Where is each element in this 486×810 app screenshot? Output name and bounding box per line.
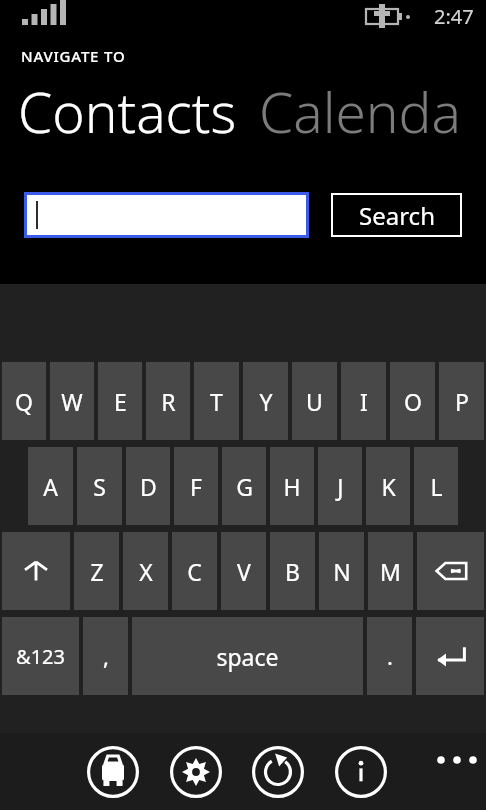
button[interactable]: H [270,447,314,525]
staticText: Search [359,199,435,232]
button[interactable]: &123 [2,617,79,695]
staticText: Z [90,556,104,587]
button[interactable]: More options [434,737,480,783]
button[interactable]: F [174,447,218,525]
staticText: J [337,471,344,502]
button[interactable]: X [123,532,168,610]
button[interactable]: N [319,532,364,610]
button[interactable]: Info [332,743,390,801]
button[interactable]: P [439,362,484,440]
staticText: R [161,386,176,417]
staticText: D [140,471,157,502]
button[interactable]: . [367,617,412,695]
staticText: S [93,471,106,502]
staticText: V [237,556,251,587]
button[interactable]: B [270,532,315,610]
staticText: H [283,471,301,502]
staticText: NAVIGATE TO [21,46,126,66]
button[interactable]: Settings [167,743,225,801]
staticText: L [430,471,443,502]
staticText: E [114,386,127,417]
button[interactable]: O [390,362,435,440]
button[interactable]: Contacts [18,74,237,146]
button[interactable]: E [98,362,142,440]
button[interactable]: K [366,447,410,525]
button[interactable]: Q [2,362,46,440]
button[interactable]: G [222,447,266,525]
staticText: M [380,556,401,587]
button[interactable]: , [83,617,128,695]
button[interactable]: L [414,447,458,525]
button[interactable]: R [146,362,190,440]
button[interactable]: Z [74,532,119,610]
staticText: . [387,641,393,671]
staticText: P [455,386,469,417]
staticText: 2:47 [434,3,474,30]
button[interactable]: Y [243,362,288,440]
staticText: &123 [16,643,65,670]
button[interactable]: Refresh [249,743,307,801]
button[interactable]: J [318,447,362,525]
staticText: N [333,556,351,587]
button[interactable]: Shift [2,532,70,610]
staticText: I [360,386,368,417]
staticText: O [404,386,422,417]
button[interactable]: T [194,362,239,440]
button[interactable]: W [50,362,94,440]
button[interactable]: Backspace [417,532,484,610]
staticText: , [103,641,109,671]
button[interactable]: Drive mode [84,743,142,801]
staticText: A [43,471,58,502]
staticText: X [139,556,153,587]
button[interactable]: D [126,447,170,525]
button[interactable]: Search [333,195,460,235]
button[interactable]: space [132,617,363,695]
staticText: F [190,471,202,502]
button[interactable]: U [292,362,337,440]
staticText: space [216,641,279,672]
button[interactable]: A [28,447,73,525]
button[interactable]: M [368,532,413,610]
button[interactable]: Calenda [259,74,462,146]
staticText: T [210,386,223,417]
staticText: Y [259,386,273,417]
staticText: G [236,471,253,502]
staticText: B [285,556,300,587]
staticText: K [381,471,396,502]
button[interactable]: V [221,532,266,610]
staticText: C [187,556,202,587]
button[interactable]: I [341,362,386,440]
staticText: U [306,386,323,417]
staticText: Q [15,386,33,417]
button[interactable]: S [77,447,122,525]
button[interactable]: C [172,532,217,610]
button[interactable]: Enter [416,617,484,695]
staticText: W [61,386,83,417]
button[interactable] [27,195,306,235]
